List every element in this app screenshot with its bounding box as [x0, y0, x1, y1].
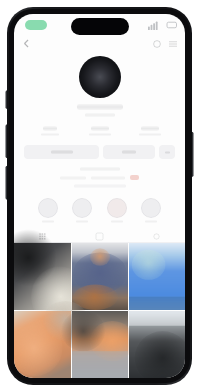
- button[interactable]: Photo 1: [14, 243, 71, 310]
- button[interactable]: [72, 198, 92, 223]
- button[interactable]: [103, 145, 155, 159]
- button[interactable]: Notifications: [150, 37, 163, 50]
- button[interactable]: [75, 125, 125, 137]
- button[interactable]: [24, 145, 99, 159]
- button[interactable]: Tab 2: [71, 231, 128, 242]
- button[interactable]: More options: [166, 37, 179, 50]
- button[interactable]: [141, 198, 161, 223]
- button[interactable]: [38, 198, 58, 223]
- button[interactable]: Back: [20, 37, 33, 50]
- button[interactable]: [125, 125, 175, 137]
- button[interactable]: Photo 3: [129, 243, 185, 310]
- button[interactable]: [107, 198, 127, 223]
- button[interactable]: [24, 125, 75, 137]
- button[interactable]: Photo 5: [72, 311, 128, 378]
- button[interactable]: More: [159, 145, 175, 159]
- button[interactable]: Profile photo: [79, 56, 121, 98]
- button[interactable]: Photo 6: [129, 311, 185, 378]
- button[interactable]: Photo 4: [14, 311, 71, 378]
- button[interactable]: Tab 1: [14, 231, 71, 242]
- button[interactable]: Photo 2: [72, 243, 128, 310]
